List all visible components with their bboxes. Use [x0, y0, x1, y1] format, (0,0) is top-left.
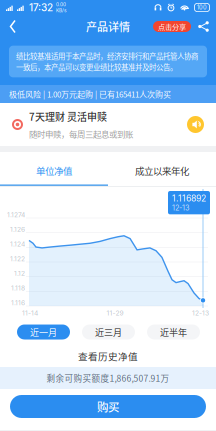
staticText: 7天理财 灵活申赎 [29, 109, 107, 124]
button[interactable]: Share [197, 20, 210, 33]
button[interactable]: Back [4, 15, 28, 37]
staticText: KB/s [56, 7, 67, 13]
staticText: 近三月 [95, 325, 122, 338]
staticText: 1.116 [11, 299, 25, 307]
button[interactable]: Announcement [187, 116, 204, 133]
staticText: 点击分享 [158, 21, 186, 32]
staticText: 购买 [97, 398, 119, 415]
button[interactable]: 点击分享 [153, 21, 191, 32]
button[interactable]: 近一月 [17, 324, 70, 339]
staticText: 成立以来年化 [135, 164, 189, 177]
staticText: 1.1274 [7, 211, 25, 219]
button[interactable]: 成立以来年化 [108, 152, 216, 186]
staticText: 11-29 [106, 309, 123, 317]
staticText: 1.116892 [172, 193, 206, 203]
button[interactable]: 购买 [10, 395, 206, 418]
staticText: 17:32 [29, 1, 53, 14]
staticText: 产品详情 [86, 18, 130, 34]
staticText: 12-13 [192, 309, 209, 317]
staticText: 随时申赎，每周三起息或到账 [29, 128, 133, 140]
staticText: 单位净值 [36, 164, 72, 177]
staticText: 1.126 [10, 225, 25, 233]
button[interactable]: 查看历史净值 [0, 345, 216, 367]
staticText: 极低风险 | 1.00万元起购 | 已有165411人次购买 [9, 88, 171, 100]
button[interactable]: 近半年 [147, 324, 200, 339]
button[interactable]: 近三月 [82, 324, 135, 339]
staticText: 12-13 [172, 203, 190, 212]
staticText: 1.118 [11, 284, 25, 292]
button[interactable]: 单位净值 [0, 152, 108, 186]
staticText: 11-14 [22, 309, 38, 317]
staticText: 近半年 [160, 325, 187, 338]
staticText: 0.00 [56, 2, 66, 7]
staticText: 近一月 [30, 325, 57, 338]
staticText: 1.122 [10, 255, 25, 263]
staticText: 剩余可购买额度1,866,507.91万 [46, 372, 169, 384]
staticText: 绩比较基准适用于本产品时，经济安排行和产品托管人协商一致后，本产品可以变更业绩比… [16, 51, 198, 72]
staticText: 100 [197, 4, 207, 11]
staticText: 查看历史净值 [78, 349, 138, 363]
staticText: 1.12 [14, 269, 25, 277]
staticText: 1.124 [10, 240, 25, 248]
